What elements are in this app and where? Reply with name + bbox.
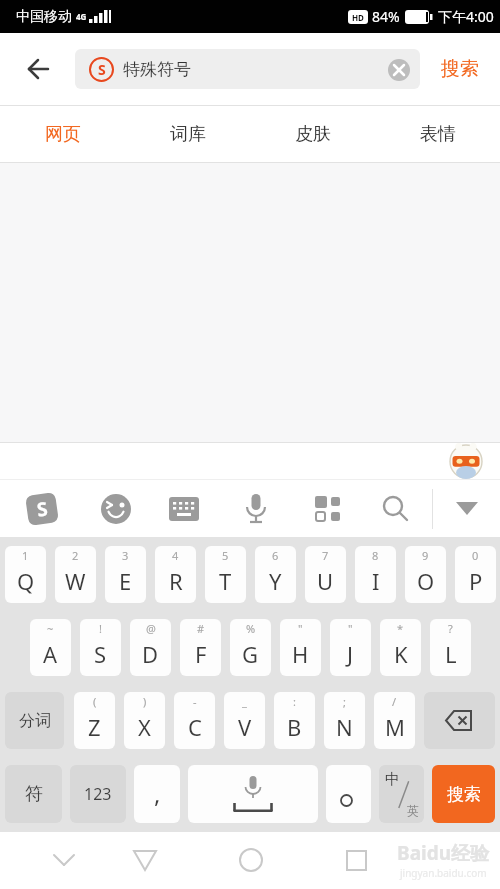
staticText: G [242, 639, 259, 669]
button[interactable]: 搜索 [432, 765, 495, 823]
staticText: S [94, 639, 107, 669]
staticText: 1 [22, 548, 29, 563]
button[interactable] [34, 832, 94, 888]
button[interactable] [326, 832, 386, 888]
staticText: Y [269, 566, 282, 596]
button[interactable]: / [374, 692, 415, 749]
button[interactable]: : [274, 692, 315, 749]
staticText: 表情 [420, 123, 456, 146]
button[interactable]: - [174, 692, 215, 749]
staticText: ; [343, 694, 346, 709]
staticText: 0 [472, 548, 479, 563]
button[interactable]: 皮肤 [250, 106, 375, 162]
button[interactable]: 7 [305, 546, 346, 603]
staticText: O [417, 566, 435, 596]
staticText: 分词 [19, 711, 51, 731]
button[interactable]: ; [324, 692, 365, 749]
button[interactable]: 8 [355, 546, 396, 603]
staticText: Baidu经验 [397, 840, 490, 866]
staticText: 中 [385, 770, 400, 789]
button[interactable] [148, 480, 220, 537]
button[interactable]: 搜索 [420, 33, 500, 105]
staticText: D [142, 639, 159, 669]
staticText: 2 [72, 548, 79, 563]
button[interactable]: 3 [105, 546, 146, 603]
button[interactable] [188, 765, 318, 823]
button[interactable]: " [280, 619, 321, 676]
staticText: 123 [84, 783, 112, 805]
button[interactable]: 1 [5, 546, 46, 603]
staticText: 符 [25, 783, 43, 806]
button[interactable]: 2 [55, 546, 96, 603]
staticText: 84% [372, 7, 400, 26]
button[interactable] [364, 480, 428, 537]
staticText: X [138, 712, 151, 742]
staticText: R [169, 566, 183, 596]
staticText: 4 [172, 548, 179, 563]
button[interactable]: 词库 [125, 106, 250, 162]
staticText: 特殊符号 [123, 59, 191, 80]
button[interactable]: ) [124, 692, 165, 749]
staticText: 下午4:00 [438, 7, 494, 26]
button[interactable]: 9 [405, 546, 446, 603]
button[interactable] [292, 480, 364, 537]
button[interactable]: 6 [255, 546, 296, 603]
staticText: " [348, 621, 353, 636]
button[interactable]: 123 [70, 765, 126, 823]
staticText: S [35, 495, 50, 523]
staticText: HD [352, 12, 364, 23]
button[interactable]: % [230, 619, 271, 676]
button[interactable]: # [180, 619, 221, 676]
button[interactable]: S [0, 480, 84, 537]
button[interactable] [433, 480, 500, 537]
button[interactable]: ( [74, 692, 115, 749]
button[interactable] [115, 832, 175, 888]
staticText: _ [242, 694, 247, 709]
staticText: 中国移动 [16, 8, 72, 26]
staticText: B [287, 712, 302, 742]
staticText: 网页 [45, 123, 81, 146]
staticText: 搜索 [447, 784, 481, 805]
staticText: 6 [272, 548, 279, 563]
button[interactable]: 网页 [0, 106, 125, 162]
staticText: E [119, 566, 132, 596]
staticText: Z [88, 712, 101, 742]
staticText: 英 [407, 803, 419, 818]
button[interactable]: @ [130, 619, 171, 676]
staticText: / [392, 694, 397, 709]
staticText: ) [143, 694, 147, 709]
staticText: - [193, 694, 197, 709]
button[interactable]: _ [224, 692, 265, 749]
staticText: , [154, 777, 161, 810]
staticText: I [372, 566, 380, 596]
button[interactable]: , [134, 765, 180, 823]
staticText: M [385, 712, 405, 742]
button[interactable]: ! [80, 619, 121, 676]
staticText: S [98, 60, 106, 79]
button[interactable]: ? [430, 619, 471, 676]
staticText: 词库 [170, 123, 206, 146]
button[interactable] [424, 692, 495, 749]
button[interactable]: 表情 [375, 106, 500, 162]
button[interactable] [221, 832, 281, 888]
button[interactable]: 分词 [5, 692, 64, 749]
button[interactable]: * [380, 619, 421, 676]
button[interactable] [84, 480, 148, 537]
button[interactable] [0, 33, 75, 105]
button[interactable]: 符 [5, 765, 62, 823]
button[interactable]: 4 [155, 546, 196, 603]
button[interactable]: 0 [455, 546, 496, 603]
staticText: ! [99, 621, 102, 636]
button[interactable]: ~ [30, 619, 71, 676]
button[interactable]: S [75, 49, 420, 89]
staticText: 皮肤 [295, 123, 331, 146]
button[interactable]: 5 [205, 546, 246, 603]
button[interactable] [220, 480, 292, 537]
button[interactable]: 中 [379, 765, 424, 823]
staticText: 4G [76, 11, 87, 22]
staticText: L [445, 639, 457, 669]
staticText: @ [146, 621, 156, 636]
staticText: K [394, 639, 408, 669]
button[interactable]: " [330, 619, 371, 676]
button[interactable] [326, 765, 371, 823]
